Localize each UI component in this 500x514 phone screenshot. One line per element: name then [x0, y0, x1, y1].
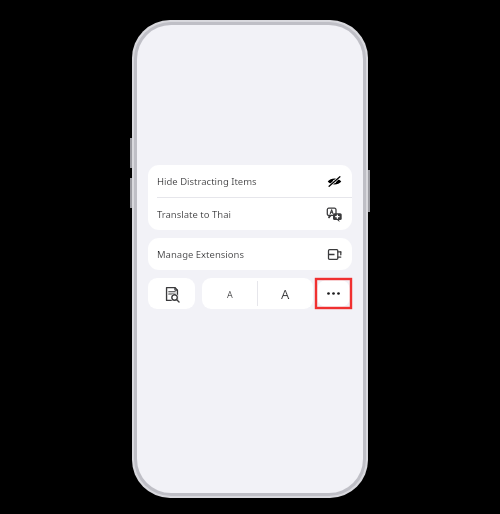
button[interactable]: Translate to Thai — [148, 198, 352, 230]
button[interactable]: Increase text size — [258, 278, 313, 309]
staticText: A — [227, 288, 233, 300]
button[interactable]: More options — [315, 278, 352, 309]
staticText: A — [281, 285, 290, 303]
button[interactable]: Decrease text size — [202, 278, 257, 309]
staticText: Translate to Thai — [157, 208, 327, 221]
button[interactable]: Manage Extensions — [148, 238, 352, 270]
staticText: Hide Distracting Items — [157, 175, 327, 188]
staticText: Manage Extensions — [157, 248, 327, 261]
button[interactable]: Find on Page — [148, 278, 195, 309]
button[interactable]: Hide Distracting Items — [148, 165, 352, 197]
